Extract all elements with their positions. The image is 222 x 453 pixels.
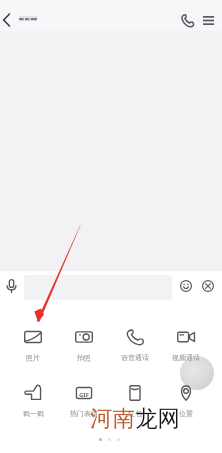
staticText: 拍照	[77, 353, 91, 362]
button[interactable]: Emoji	[178, 278, 193, 293]
staticText: 位置	[179, 409, 193, 418]
button[interactable]	[62, 381, 106, 409]
staticText: GIF	[79, 391, 89, 399]
button[interactable]	[62, 325, 106, 353]
button[interactable]: Back	[0, 8, 18, 32]
button[interactable]: Call	[175, 8, 199, 32]
button[interactable]	[11, 381, 55, 409]
button[interactable]	[113, 325, 157, 353]
button[interactable]	[164, 325, 208, 353]
button[interactable]	[11, 325, 55, 353]
button[interactable]: Menu	[196, 8, 220, 32]
button[interactable]	[24, 275, 172, 300]
button[interactable]: Voice input	[1, 276, 21, 296]
staticText: 戳一戳	[23, 409, 44, 418]
button[interactable]	[164, 381, 208, 409]
staticText: 照片	[26, 353, 40, 362]
button[interactable]: Close panel	[200, 278, 215, 293]
staticText: 语音通话	[121, 353, 149, 362]
staticText: 红包	[128, 409, 142, 418]
button[interactable]	[113, 381, 157, 409]
staticText: 龙网	[135, 404, 180, 432]
staticText: 河南	[90, 404, 135, 432]
staticText: 热门表情	[70, 409, 98, 418]
staticText: 视频通话	[172, 353, 200, 362]
